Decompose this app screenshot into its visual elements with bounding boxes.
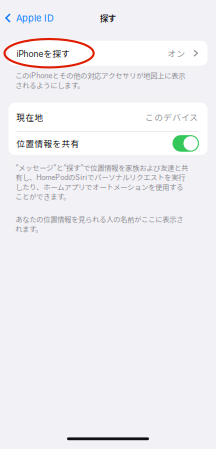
staticText: あなたの位置情報を見られる人の名前がここに表示されます。 — [15, 214, 183, 234]
staticText: iPhoneを探す — [17, 47, 71, 59]
staticText: 探す — [100, 12, 116, 24]
button[interactable]: Apple ID — [0, 8, 60, 28]
staticText: Apple ID — [16, 12, 54, 24]
button[interactable]: iPhoneを探す — [8, 41, 207, 66]
staticText: このデバイス — [145, 111, 198, 123]
staticText: このiPhoneとその他の対応アクセサリが地図上に表示されるようにします。 — [15, 70, 185, 90]
staticText: 現在地 — [17, 111, 44, 123]
staticText: “メッセージ”と“探す”で位置情報を家族および友達と共有し、HomePodのSi… — [15, 162, 188, 202]
staticText: 位置情報を共有 — [17, 137, 80, 150]
button[interactable]: 現在地 — [8, 103, 207, 131]
staticText: オン — [167, 47, 185, 59]
button[interactable]: 位置情報を共有 — [8, 132, 207, 155]
